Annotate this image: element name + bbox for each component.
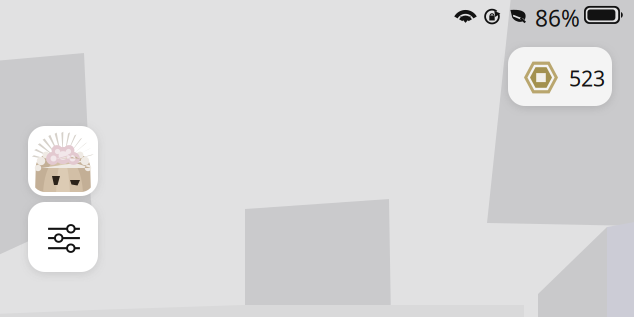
button[interactable]: Avatar [28,126,98,196]
button[interactable]: Settings [28,202,98,272]
staticText: 86% [535,3,580,33]
button[interactable]: 523 [508,47,612,106]
staticText: 523 [569,64,605,92]
